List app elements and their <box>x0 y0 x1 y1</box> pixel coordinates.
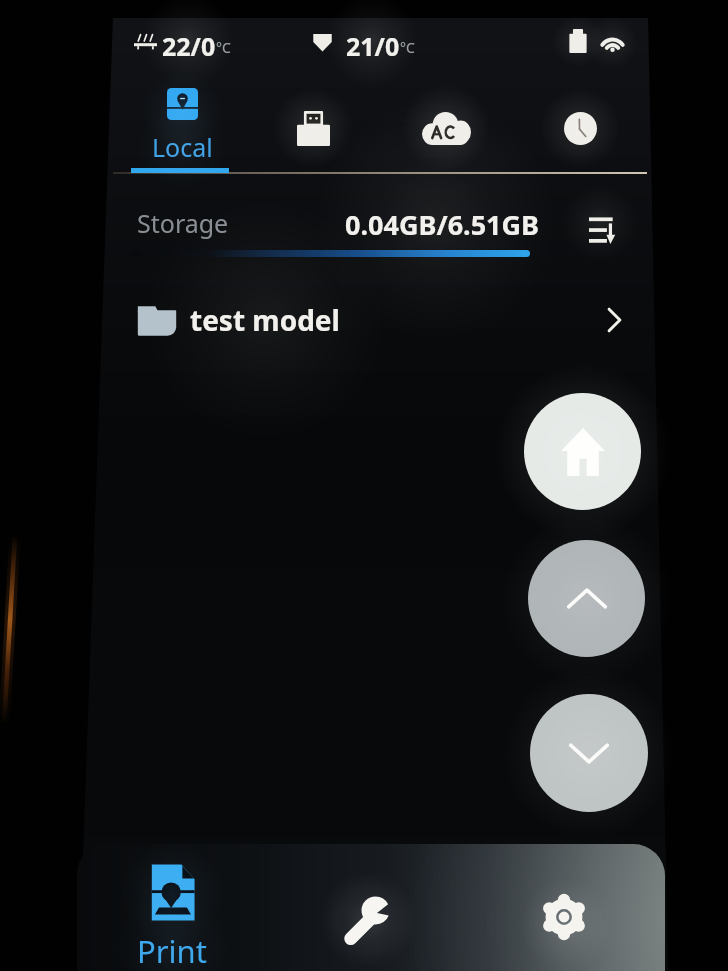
staticText: °C <box>216 38 231 57</box>
button[interactable]: Settings <box>504 862 624 971</box>
button[interactable]: Home <box>524 393 641 510</box>
button[interactable]: Tools <box>308 862 428 971</box>
button[interactable]: Print <box>112 864 232 971</box>
staticText: 0.04GB/6.51GB <box>345 206 540 243</box>
button[interactable]: History <box>531 88 629 170</box>
staticText: 21/0 <box>346 29 400 63</box>
staticText: °C <box>400 38 415 57</box>
button[interactable]: Page down <box>530 694 648 812</box>
staticText: Print <box>137 930 207 971</box>
button[interactable]: Local <box>120 88 244 170</box>
button[interactable]: test model <box>111 290 648 350</box>
staticText: test model <box>190 301 340 339</box>
button[interactable]: Anycubic Cloud <box>397 88 495 170</box>
staticText: 22/0 <box>162 29 216 63</box>
button[interactable]: Sort <box>583 208 627 252</box>
staticText: Storage <box>137 206 229 240</box>
button[interactable]: USB storage <box>264 88 362 170</box>
button[interactable]: Page up <box>528 540 645 657</box>
staticText: Local <box>152 130 213 164</box>
